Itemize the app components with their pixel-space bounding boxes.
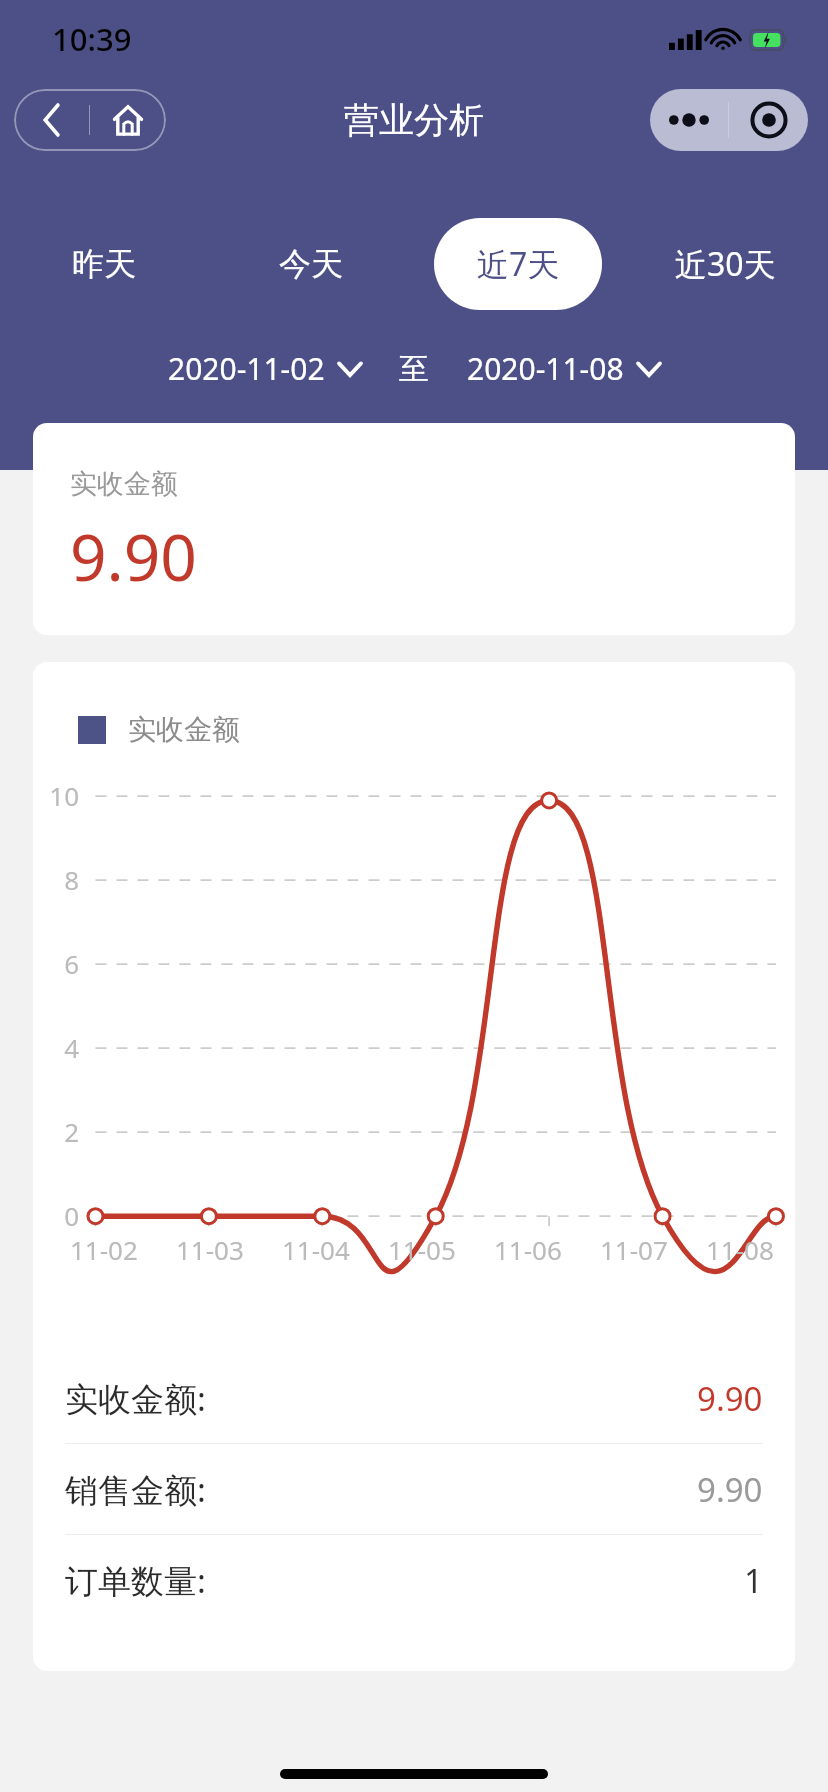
staticText: 11-05	[388, 1232, 456, 1267]
staticText: 9.90	[697, 1376, 763, 1421]
button[interactable]: 今天	[227, 218, 395, 310]
button[interactable]: 实收金额	[78, 712, 240, 747]
staticText: 10:39	[52, 18, 132, 60]
staticText: 订单数量:	[65, 1558, 206, 1603]
staticText: 10	[33, 778, 79, 813]
button[interactable]: 2020-11-08	[463, 340, 664, 397]
staticText: 至	[399, 350, 429, 388]
button[interactable]: 订单数量:	[33, 1535, 795, 1625]
staticText: 9.90	[697, 1467, 763, 1512]
button[interactable]: 昨天	[20, 218, 188, 310]
staticText: 8	[33, 862, 79, 897]
staticText: 2020-11-02	[168, 348, 325, 389]
staticText: 9.90	[70, 513, 197, 600]
staticText: 1	[744, 1558, 763, 1603]
staticText: 营业分析	[344, 98, 484, 142]
staticText: 4	[33, 1030, 79, 1065]
button[interactable]: More options	[650, 89, 728, 151]
staticText: 11-08	[706, 1232, 774, 1267]
staticText: 近7天	[477, 242, 560, 286]
button[interactable]: 销售金额:	[33, 1444, 795, 1535]
staticText: 昨天	[72, 244, 136, 284]
staticText: 6	[33, 946, 79, 981]
staticText: 2020-11-08	[467, 348, 624, 389]
staticText: 实收金额	[70, 467, 178, 501]
staticText: 11-04	[282, 1232, 350, 1267]
staticText: 11-06	[494, 1232, 562, 1267]
button[interactable]: Close	[729, 89, 808, 151]
button[interactable]: Back	[14, 89, 89, 151]
staticText: 0	[33, 1198, 79, 1233]
button[interactable]: 实收金额	[33, 423, 795, 635]
staticText: 近30天	[675, 242, 776, 286]
button[interactable]: 近7天	[434, 218, 602, 310]
staticText: 2	[33, 1114, 79, 1149]
button[interactable]: 实收金额:	[33, 1353, 795, 1444]
button[interactable]: 近30天	[641, 218, 809, 310]
staticText: 销售金额:	[65, 1467, 206, 1512]
staticText: 11-07	[600, 1232, 668, 1267]
staticText: 11-02	[70, 1232, 138, 1267]
button[interactable]: 2020-11-02	[164, 340, 365, 397]
staticText: 实收金额:	[65, 1376, 206, 1421]
staticText: 今天	[279, 244, 343, 284]
staticText: 实收金额	[128, 712, 240, 747]
staticText: 11-03	[176, 1232, 244, 1267]
button[interactable]: Home	[90, 89, 166, 151]
